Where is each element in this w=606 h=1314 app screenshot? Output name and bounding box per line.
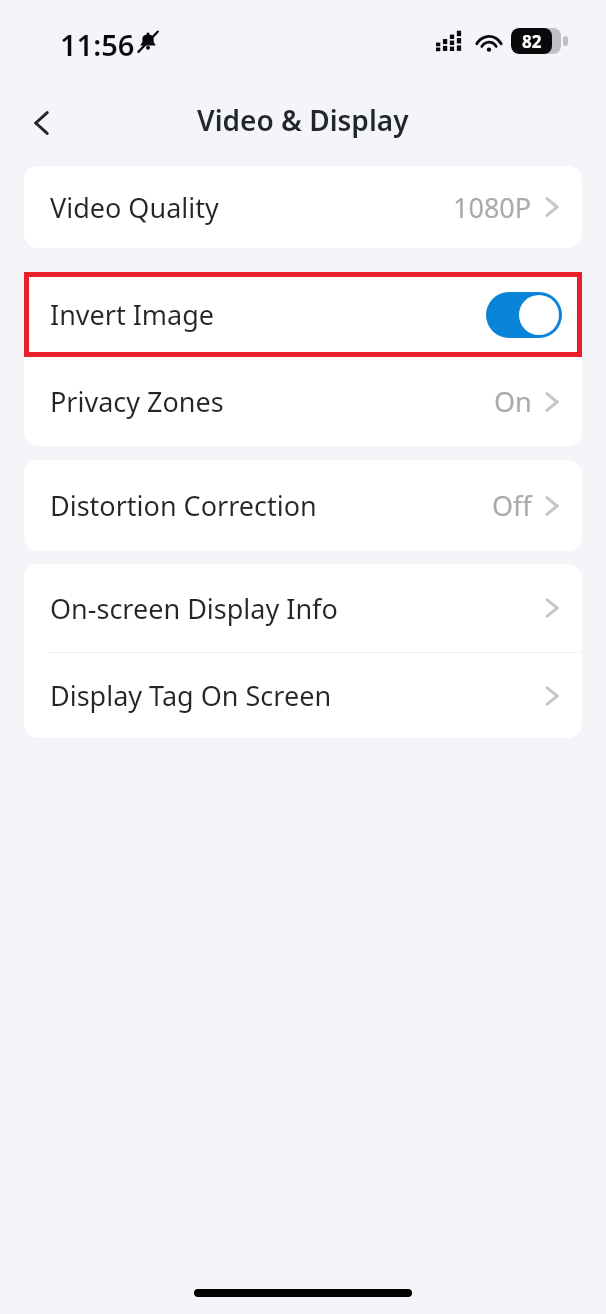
button[interactable]: Invert Image toggle bbox=[486, 292, 562, 338]
staticText: Off bbox=[492, 487, 532, 524]
button[interactable]: Back bbox=[14, 95, 70, 151]
staticText: 11:56 bbox=[60, 25, 135, 64]
staticText: Invert Image bbox=[50, 296, 215, 333]
button[interactable]: Display Tag On Screen bbox=[24, 653, 582, 738]
staticText: Video & Display bbox=[197, 101, 409, 139]
button[interactable]: Privacy Zones bbox=[24, 357, 582, 446]
button[interactable]: Video Quality bbox=[24, 166, 582, 248]
staticText: 82 bbox=[522, 30, 542, 53]
staticText: 1080P bbox=[453, 189, 532, 226]
button[interactable]: Distortion Correction bbox=[24, 460, 582, 551]
staticText: Display Tag On Screen bbox=[50, 677, 332, 714]
staticText: On bbox=[494, 383, 532, 420]
staticText: Video Quality bbox=[50, 189, 219, 226]
button[interactable]: On-screen Display Info bbox=[24, 564, 582, 652]
staticText: Distortion Correction bbox=[50, 487, 317, 524]
staticText: On-screen Display Info bbox=[50, 590, 338, 627]
staticText: Privacy Zones bbox=[50, 383, 224, 420]
button[interactable]: Invert Image bbox=[24, 272, 582, 357]
